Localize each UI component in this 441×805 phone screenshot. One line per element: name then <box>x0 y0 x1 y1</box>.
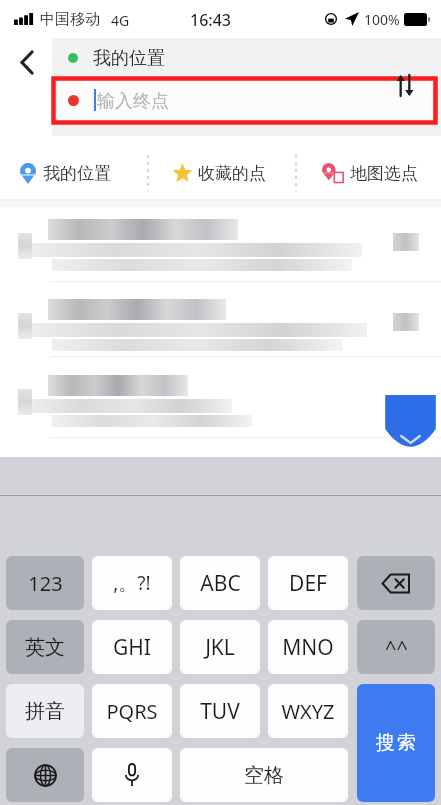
button[interactable]: ABC <box>180 556 260 610</box>
button[interactable] <box>0 371 441 441</box>
staticText: PQRS <box>106 698 158 725</box>
button[interactable]: DEF <box>268 556 348 610</box>
staticText: 拼音 <box>25 699 65 724</box>
button[interactable] <box>0 215 441 285</box>
button[interactable]: WXYZ <box>268 684 348 738</box>
staticText: WXYZ <box>281 698 335 725</box>
button[interactable]: 收藏的点 <box>172 153 294 193</box>
button[interactable]: 地图选点 <box>322 153 438 193</box>
button[interactable]: Back <box>6 40 48 84</box>
staticText: 输入终点 <box>97 90 169 113</box>
staticText: 搜索 <box>375 731 417 755</box>
staticText: 16:43 <box>190 9 231 31</box>
button[interactable]: Swap origin and destination <box>388 68 422 102</box>
button[interactable]: ,。?! <box>92 556 172 610</box>
button[interactable]: PQRS <box>92 684 172 738</box>
staticText: 我的位置 <box>93 47 165 70</box>
staticText: 100% <box>364 10 400 29</box>
button[interactable]: Switch keyboard <box>6 748 84 802</box>
staticText: 123 <box>28 570 63 597</box>
button[interactable]: GHI <box>92 620 172 674</box>
button[interactable]: TUV <box>180 684 260 738</box>
button[interactable]: 输入终点 <box>52 77 437 124</box>
staticText: 英文 <box>25 635 65 660</box>
button[interactable]: 我的位置 <box>52 38 441 77</box>
staticText: TUV <box>200 697 240 726</box>
button[interactable]: JKL <box>180 620 260 674</box>
staticText: 我的位置 <box>43 163 111 184</box>
staticText: ABC <box>200 569 241 598</box>
button[interactable]: 拼音 <box>6 684 84 738</box>
button[interactable]: 搜索 <box>357 684 435 802</box>
button[interactable]: Delete <box>357 556 435 610</box>
button[interactable]: 123 <box>6 556 84 610</box>
button[interactable]: 英文 <box>6 620 84 674</box>
button[interactable]: MNO <box>268 620 348 674</box>
button[interactable]: ^^ <box>357 620 435 674</box>
staticText: GHI <box>113 633 151 662</box>
button[interactable]: Voice input <box>92 748 172 802</box>
staticText: ,。?! <box>113 570 151 596</box>
staticText: 4G <box>111 11 130 30</box>
staticText: JKL <box>205 633 235 662</box>
staticText: DEF <box>289 569 327 598</box>
staticText: MNO <box>282 633 334 662</box>
staticText: 收藏的点 <box>198 163 266 184</box>
button[interactable]: 空格 <box>180 748 348 802</box>
button[interactable]: 我的位置 <box>20 153 145 193</box>
staticText: ^^ <box>385 634 408 661</box>
staticText: 空格 <box>244 763 284 788</box>
staticText: 中国移动 <box>40 10 100 29</box>
staticText: 地图选点 <box>350 163 418 184</box>
button[interactable] <box>0 295 441 365</box>
